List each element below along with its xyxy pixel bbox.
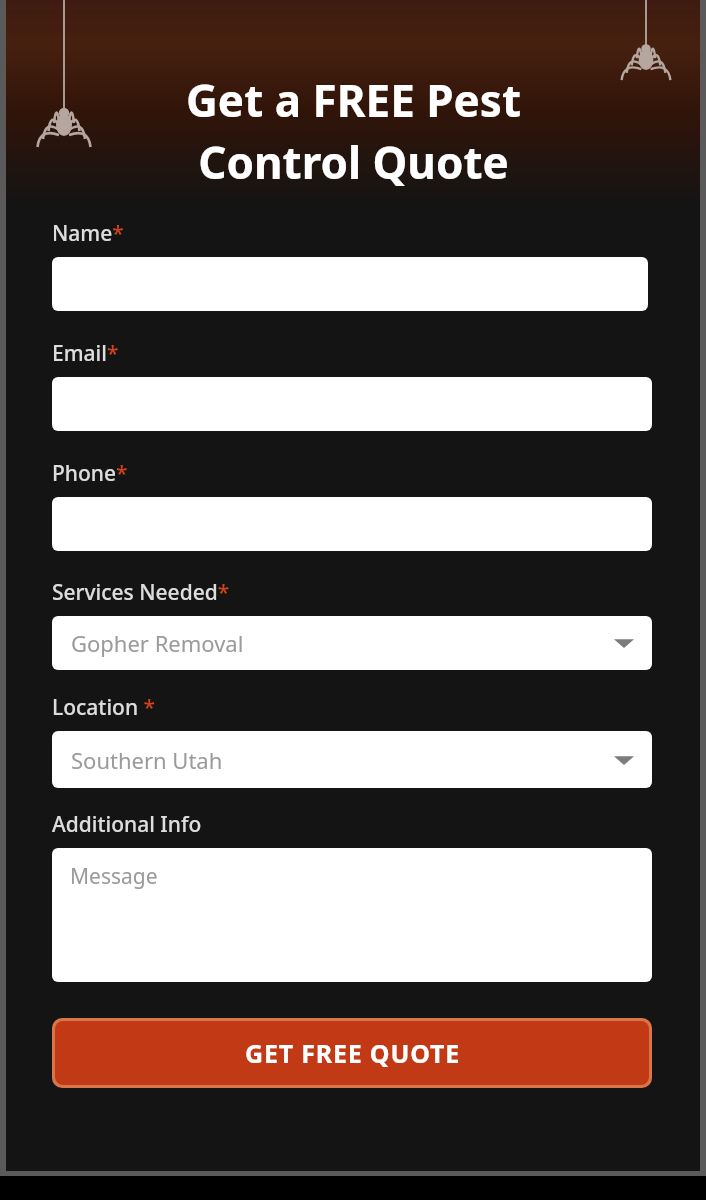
- staticText: Message: [70, 862, 158, 891]
- staticText: Location *: [52, 693, 156, 722]
- staticText: GET FREE QUOTE: [245, 1036, 460, 1070]
- staticText: Email*: [52, 339, 119, 368]
- button[interactable]: [52, 377, 652, 431]
- button[interactable]: [52, 257, 648, 311]
- staticText: Name*: [52, 219, 124, 248]
- staticText: Additional Info: [52, 810, 202, 839]
- staticText: Gopher Removal: [71, 628, 244, 658]
- button[interactable]: GET FREE QUOTE: [55, 1021, 649, 1085]
- button[interactable]: Gopher Removal: [52, 616, 652, 670]
- staticText: Southern Utah: [71, 745, 223, 775]
- staticText: Phone*: [52, 459, 128, 488]
- staticText: Get a FREE Pest Control Quote: [186, 70, 521, 192]
- button[interactable]: Message: [52, 848, 652, 982]
- button[interactable]: Southern Utah: [52, 731, 652, 788]
- button[interactable]: [52, 497, 652, 551]
- staticText: Services Needed*: [52, 578, 230, 607]
